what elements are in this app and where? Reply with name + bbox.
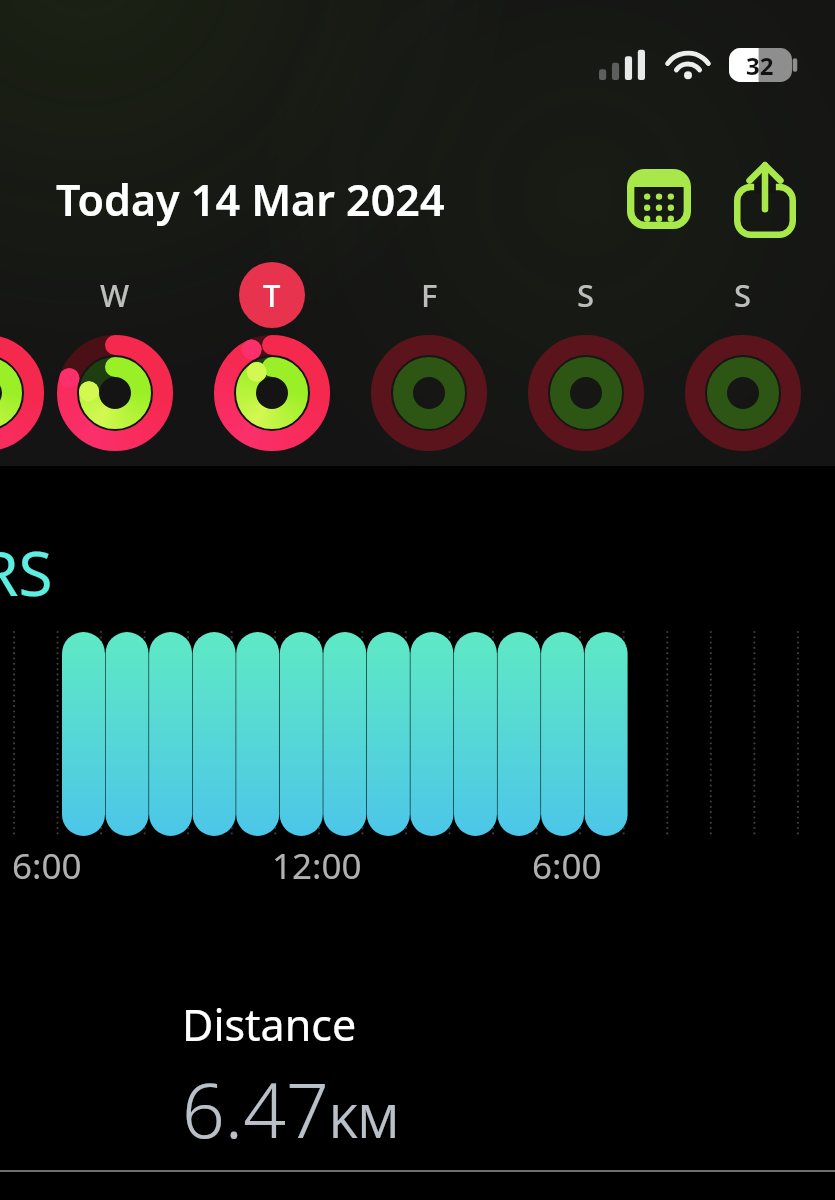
- button[interactable]: T: [239, 262, 305, 328]
- button[interactable]: Today 14 Mar 2024: [56, 170, 445, 229]
- button[interactable]: Share: [721, 155, 809, 243]
- staticText: T: [263, 274, 281, 316]
- button[interactable]: W: [82, 262, 148, 328]
- staticText: KM: [329, 1089, 400, 1152]
- staticText: 6:00: [532, 842, 602, 890]
- button[interactable]: S: [553, 262, 619, 328]
- button[interactable]: Distance: [182, 995, 400, 1160]
- staticText: W: [100, 274, 130, 316]
- staticText: RS: [0, 530, 53, 614]
- button[interactable]: F: [396, 262, 462, 328]
- staticText: 6.47: [182, 1058, 329, 1160]
- staticText: S: [734, 274, 752, 316]
- staticText: Distance: [182, 995, 357, 1054]
- staticText: S: [577, 274, 595, 316]
- staticText: F: [421, 274, 438, 316]
- staticText: 12:00: [272, 842, 362, 890]
- staticText: 32: [746, 49, 774, 82]
- button[interactable]: S: [710, 262, 776, 328]
- staticText: 6:00: [12, 842, 82, 890]
- button[interactable]: Calendar: [617, 157, 701, 241]
